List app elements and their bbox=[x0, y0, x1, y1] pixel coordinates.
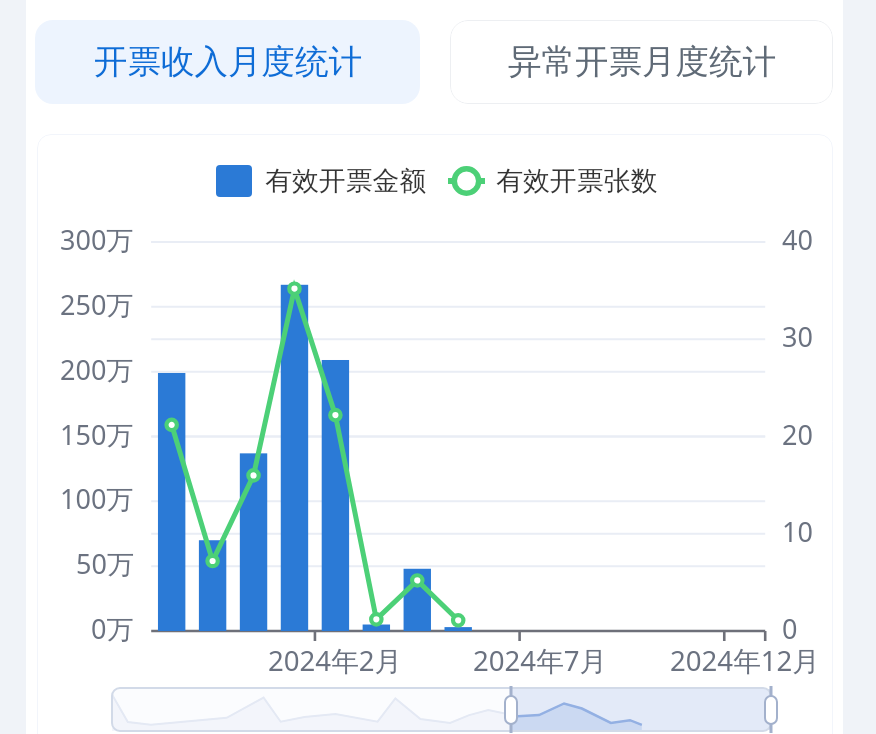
staticText: 开票收入月度统计 bbox=[94, 41, 362, 83]
staticText: 40 bbox=[782, 221, 813, 258]
button[interactable]: 异常开票月度统计 bbox=[450, 20, 833, 104]
staticText: 20 bbox=[782, 416, 813, 453]
staticText: 200万 bbox=[60, 351, 134, 388]
staticText: 2024年7月 bbox=[473, 641, 608, 679]
staticText: 有效开票金额 bbox=[265, 164, 427, 198]
staticText: 异常开票月度统计 bbox=[508, 41, 776, 83]
button[interactable]: 开票收入月度统计 bbox=[35, 20, 420, 104]
staticText: 50万 bbox=[76, 545, 134, 582]
staticText: 2024年12月 bbox=[670, 641, 820, 679]
staticText: 10 bbox=[782, 513, 813, 550]
staticText: 0万 bbox=[91, 610, 134, 647]
staticText: 150万 bbox=[60, 416, 134, 453]
staticText: 100万 bbox=[60, 480, 134, 517]
staticText: 30 bbox=[782, 318, 813, 355]
staticText: 有效开票张数 bbox=[496, 164, 658, 198]
staticText: 0 bbox=[782, 610, 798, 647]
staticText: 2024年2月 bbox=[268, 641, 403, 679]
staticText: 250万 bbox=[60, 286, 134, 323]
staticText: 300万 bbox=[60, 221, 134, 258]
